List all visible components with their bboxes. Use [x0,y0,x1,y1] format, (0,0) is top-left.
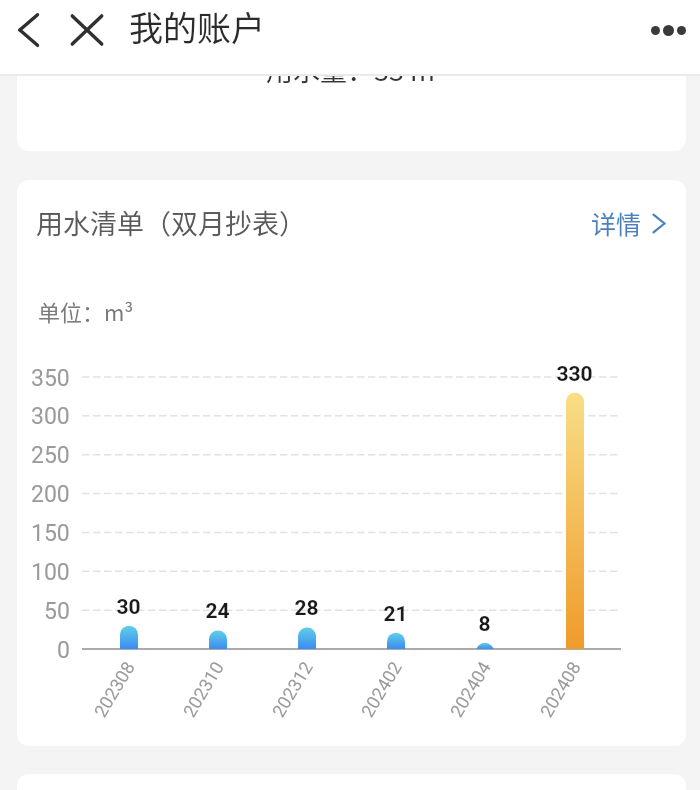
staticText: 用水量：33 m [266,50,436,89]
staticText: 单位：m³ [38,295,134,327]
staticText: 详情 [591,205,642,241]
staticText: 我的账户 [129,2,265,51]
staticText: 用水清单（双月抄表） [36,203,306,242]
button[interactable]: 详情 [591,205,666,241]
button[interactable]: Back [8,10,48,50]
button[interactable]: More options [640,2,696,58]
button[interactable]: Close [65,8,109,52]
